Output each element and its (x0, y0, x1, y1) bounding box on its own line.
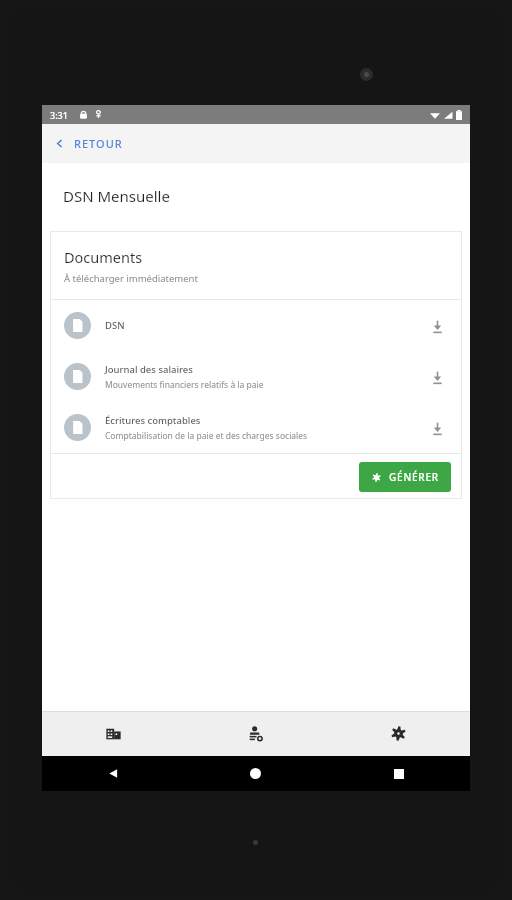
button[interactable]: Entreprise (42, 711, 184, 756)
staticText: Mouvements financiers relatifs à la paie (105, 379, 264, 391)
staticText: Écritures comptables (105, 414, 201, 427)
staticText: RETOUR (74, 136, 123, 151)
button[interactable]: RETOUR (42, 128, 137, 159)
button[interactable]: Écritures comptables (50, 402, 462, 453)
staticText: DSN Mensuelle (63, 186, 170, 206)
staticText: Comptabilisation de la paie et des charg… (105, 430, 308, 442)
button[interactable]: DSN (50, 300, 462, 351)
button[interactable]: Journal des salaires (50, 351, 462, 402)
button[interactable]: Paramètres (327, 711, 470, 756)
button[interactable]: Salariés (184, 711, 327, 756)
staticText: Journal des salaires (105, 363, 193, 376)
staticText: Documents (64, 247, 143, 267)
staticText: À télécharger immédiatement (64, 272, 198, 285)
button[interactable]: Télécharger Écritures comptables (424, 415, 450, 441)
staticText: GÉNÉRER (389, 470, 439, 484)
button[interactable]: Télécharger DSN (424, 313, 450, 339)
staticText: DSN (105, 319, 125, 332)
staticText: 3:31 (50, 109, 68, 121)
button[interactable]: GÉNÉRER (359, 462, 451, 492)
button[interactable]: Télécharger Journal des salaires (424, 364, 450, 390)
